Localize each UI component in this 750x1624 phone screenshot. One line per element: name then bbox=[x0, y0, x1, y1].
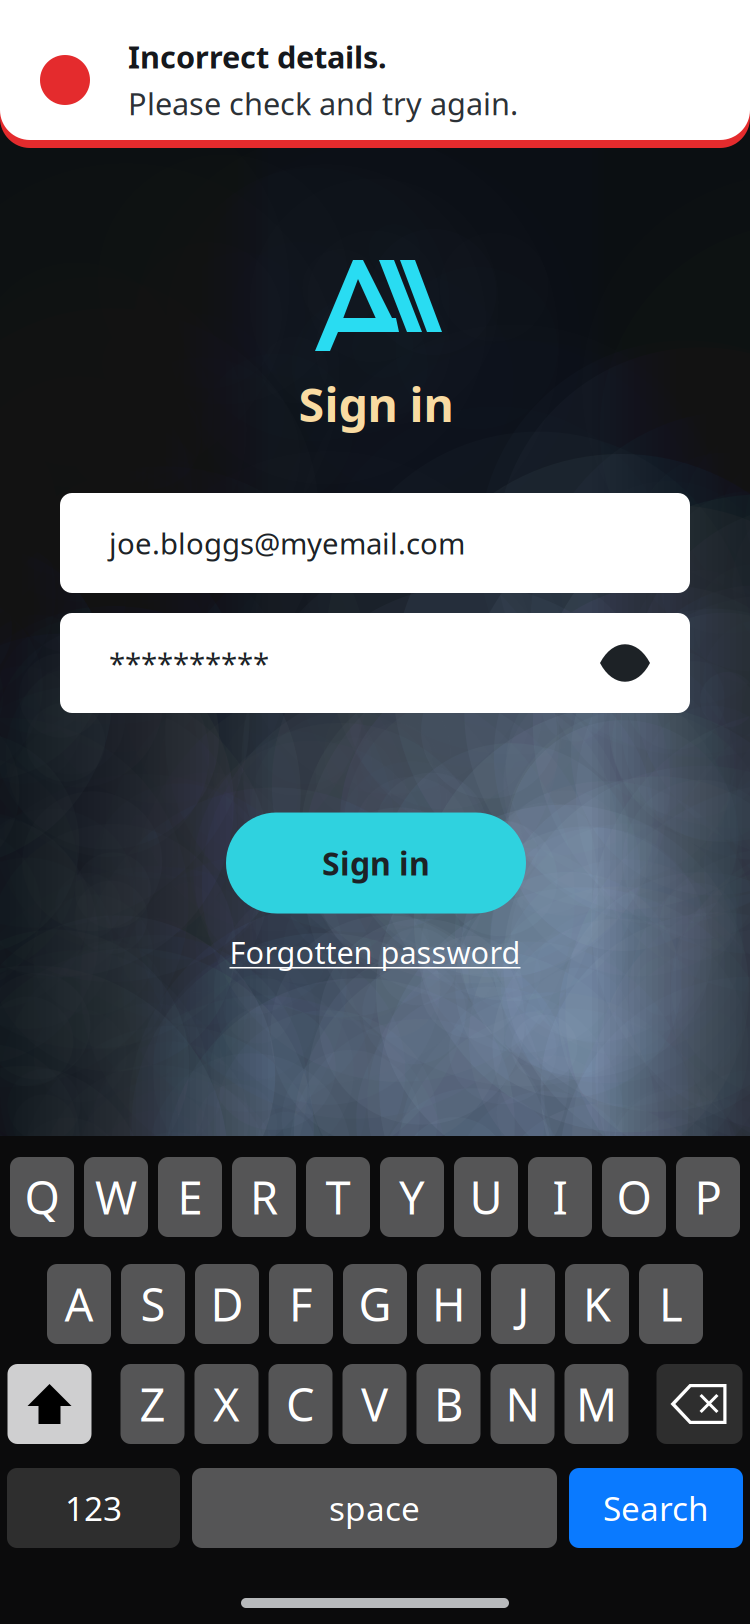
staticText: Forgotten password bbox=[229, 932, 520, 972]
staticText: 123 bbox=[65, 1486, 122, 1530]
staticText: Y bbox=[399, 1167, 425, 1227]
staticText: space bbox=[329, 1486, 420, 1530]
staticText: E bbox=[177, 1167, 202, 1227]
staticText: Sign in bbox=[298, 373, 453, 435]
staticText: R bbox=[250, 1167, 278, 1227]
button[interactable]: E bbox=[158, 1157, 222, 1237]
staticText: N bbox=[505, 1374, 539, 1434]
staticText: G bbox=[358, 1274, 391, 1334]
button[interactable]: A bbox=[47, 1264, 111, 1344]
button[interactable]: Delete bbox=[656, 1364, 742, 1444]
button[interactable]: T bbox=[306, 1157, 370, 1237]
button[interactable]: N bbox=[490, 1364, 554, 1444]
staticText: Q bbox=[24, 1167, 59, 1227]
button[interactable]: G bbox=[343, 1264, 407, 1344]
button[interactable]: W bbox=[84, 1157, 148, 1237]
button[interactable]: L bbox=[639, 1264, 703, 1344]
button[interactable]: 123 bbox=[7, 1468, 180, 1548]
staticText: X bbox=[213, 1374, 240, 1434]
button[interactable]: J bbox=[491, 1264, 555, 1344]
staticText: V bbox=[361, 1374, 388, 1434]
button[interactable]: S bbox=[121, 1264, 185, 1344]
staticText: W bbox=[95, 1167, 137, 1227]
staticText: C bbox=[286, 1374, 315, 1434]
button[interactable]: O bbox=[602, 1157, 666, 1237]
button[interactable]: V bbox=[342, 1364, 406, 1444]
button[interactable]: P bbox=[676, 1157, 740, 1237]
staticText: H bbox=[432, 1274, 466, 1334]
staticText: M bbox=[576, 1374, 617, 1434]
staticText: S bbox=[140, 1274, 165, 1334]
button[interactable]: H bbox=[417, 1264, 481, 1344]
staticText: joe.bloggs@myemail.com bbox=[109, 523, 465, 562]
button[interactable]: space bbox=[192, 1468, 557, 1548]
staticText: ********** bbox=[109, 643, 269, 682]
staticText: Incorrect details. bbox=[128, 36, 387, 77]
staticText: T bbox=[325, 1167, 350, 1227]
staticText: Sign in bbox=[322, 842, 430, 884]
button[interactable]: C bbox=[268, 1364, 332, 1444]
button[interactable]: Forgotten password bbox=[221, 926, 528, 978]
staticText: F bbox=[289, 1274, 313, 1334]
staticText: L bbox=[659, 1274, 683, 1334]
button[interactable]: B bbox=[416, 1364, 480, 1444]
button[interactable]: Shift bbox=[7, 1364, 91, 1444]
staticText: A bbox=[64, 1274, 93, 1334]
button[interactable]: F bbox=[269, 1264, 333, 1344]
button[interactable]: M bbox=[564, 1364, 628, 1444]
staticText: Search bbox=[603, 1486, 709, 1530]
staticText: Please check and try again. bbox=[128, 83, 518, 124]
staticText: P bbox=[694, 1167, 721, 1227]
button[interactable]: Y bbox=[380, 1157, 444, 1237]
button[interactable]: Sign in bbox=[226, 812, 526, 913]
staticText: O bbox=[616, 1167, 651, 1227]
button[interactable]: Z bbox=[120, 1364, 184, 1444]
button[interactable]: Q bbox=[10, 1157, 74, 1237]
staticText: K bbox=[583, 1274, 611, 1334]
button[interactable]: Show password bbox=[600, 647, 650, 679]
button[interactable]: X bbox=[194, 1364, 258, 1444]
staticText: J bbox=[517, 1274, 529, 1334]
staticText: U bbox=[469, 1167, 502, 1227]
button[interactable]: R bbox=[232, 1157, 296, 1237]
staticText: I bbox=[552, 1167, 567, 1227]
staticText: Z bbox=[139, 1374, 165, 1434]
button[interactable]: D bbox=[195, 1264, 259, 1344]
staticText: D bbox=[210, 1274, 243, 1334]
button[interactable]: U bbox=[454, 1157, 518, 1237]
button[interactable]: I bbox=[528, 1157, 592, 1237]
staticText: B bbox=[434, 1374, 463, 1434]
button[interactable]: K bbox=[565, 1264, 629, 1344]
button[interactable]: Search bbox=[569, 1468, 743, 1548]
